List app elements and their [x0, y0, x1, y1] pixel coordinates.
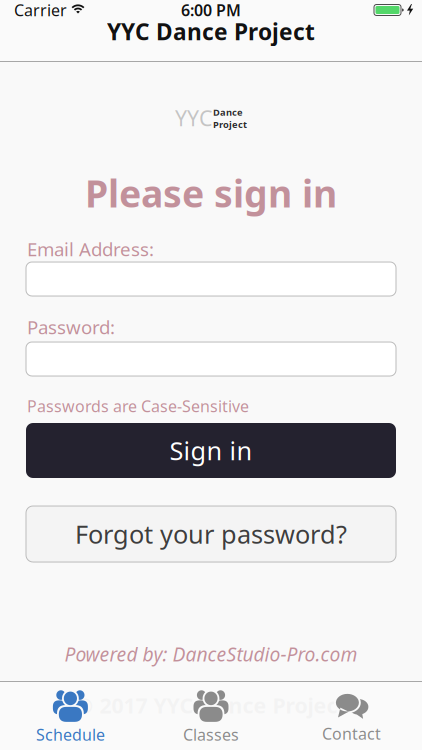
button[interactable]: Powered by: DanceStudio-Pro.com [64, 641, 357, 667]
staticText: Classes [183, 724, 239, 745]
staticText: Passwords are Case-Sensitive [27, 395, 249, 417]
button[interactable]: Contact [281, 681, 422, 748]
staticText: Contact [322, 723, 381, 744]
button[interactable] [0, 342, 422, 376]
staticText: Forgot your password? [75, 517, 347, 551]
staticText: Schedule [36, 724, 105, 745]
staticText: Sign in [169, 434, 252, 467]
staticText: Password: [27, 315, 115, 339]
staticText: Email Address: [27, 237, 154, 261]
button[interactable]: Schedule [0, 681, 141, 748]
staticText: Dance [213, 106, 243, 118]
staticText: YYC [175, 104, 212, 132]
staticText: 6:00 PM [181, 0, 241, 21]
button[interactable]: Sign in [0, 423, 422, 478]
button[interactable] [0, 262, 422, 296]
staticText: Project [213, 118, 247, 131]
button[interactable]: Forgot your password? [0, 506, 422, 562]
staticText: Please sign in [85, 168, 337, 218]
staticText: Powered by: DanceStudio-Pro.com [64, 641, 357, 667]
staticText: © 2017 YYC Dance Project [75, 691, 346, 719]
staticText: Carrier [14, 0, 67, 21]
staticText: YYC Dance Project [107, 16, 315, 46]
button[interactable]: Classes [141, 681, 281, 748]
